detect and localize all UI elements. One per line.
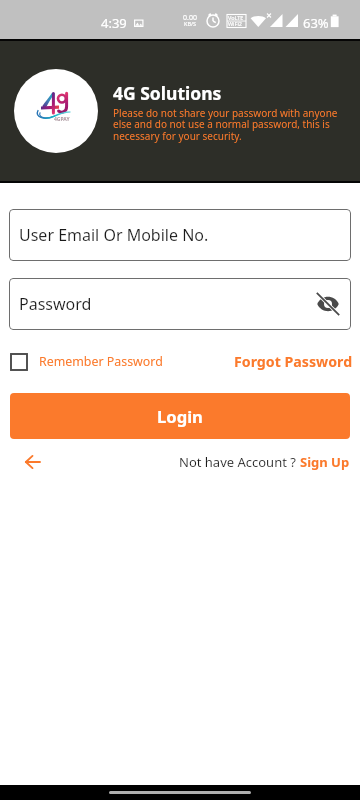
staticText: Login [157, 405, 203, 428]
staticText: 4GPAY [54, 116, 70, 123]
staticText: Password [19, 293, 92, 315]
staticText: Not have Account ? [179, 453, 300, 471]
staticText: KB/S [184, 20, 197, 27]
button[interactable]: Login [10, 393, 350, 439]
button[interactable]: User Email Or Mobile No. [9, 209, 351, 261]
staticText: 63% [303, 14, 329, 32]
button[interactable]: Password [9, 278, 351, 330]
staticText: User Email Or Mobile No. [19, 224, 209, 246]
button[interactable]: Remember Password [10, 353, 163, 370]
staticText: 4:39 [101, 14, 127, 32]
button[interactable]: Not have Account ? [179, 453, 350, 471]
staticText: Remember Password [39, 353, 163, 370]
staticText: WiFi2 [228, 20, 242, 27]
staticText: Please do not share your password with a… [113, 106, 347, 143]
staticText: 0.00 [183, 13, 197, 23]
button[interactable]: Show password [313, 289, 343, 319]
staticText: 4G Solutions [113, 81, 222, 105]
button[interactable]: Forgot Password [234, 352, 353, 371]
staticText: Sign Up [300, 453, 350, 471]
staticText: VoLTE [228, 14, 244, 21]
button[interactable]: Back [10, 446, 50, 478]
